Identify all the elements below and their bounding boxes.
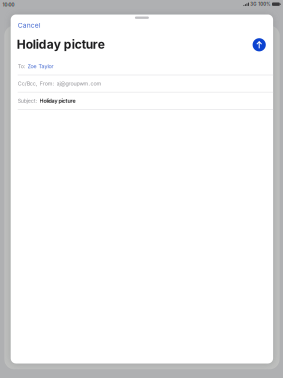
button[interactable]: Cancel [11, 19, 48, 32]
staticText: 3G [250, 2, 256, 7]
staticText: Cancel [18, 21, 41, 29]
staticText: Holiday picture [17, 37, 105, 52]
button[interactable]: Cc/Bcc, From: [11, 75, 273, 93]
button[interactable]: Subject: [11, 93, 273, 110]
button[interactable]: Send [250, 35, 269, 54]
staticText: Cc/Bcc, From: [18, 80, 55, 87]
staticText: Zoe Taylor [27, 63, 53, 70]
staticText: Holiday picture [39, 98, 75, 104]
staticText: 100% [258, 2, 270, 7]
staticText: 10:00 [3, 2, 15, 7]
staticText: To: [18, 63, 26, 70]
staticText: Subject: [18, 98, 38, 104]
staticText: aj@groupwm.com [56, 80, 101, 87]
button[interactable]: To: [11, 58, 273, 75]
